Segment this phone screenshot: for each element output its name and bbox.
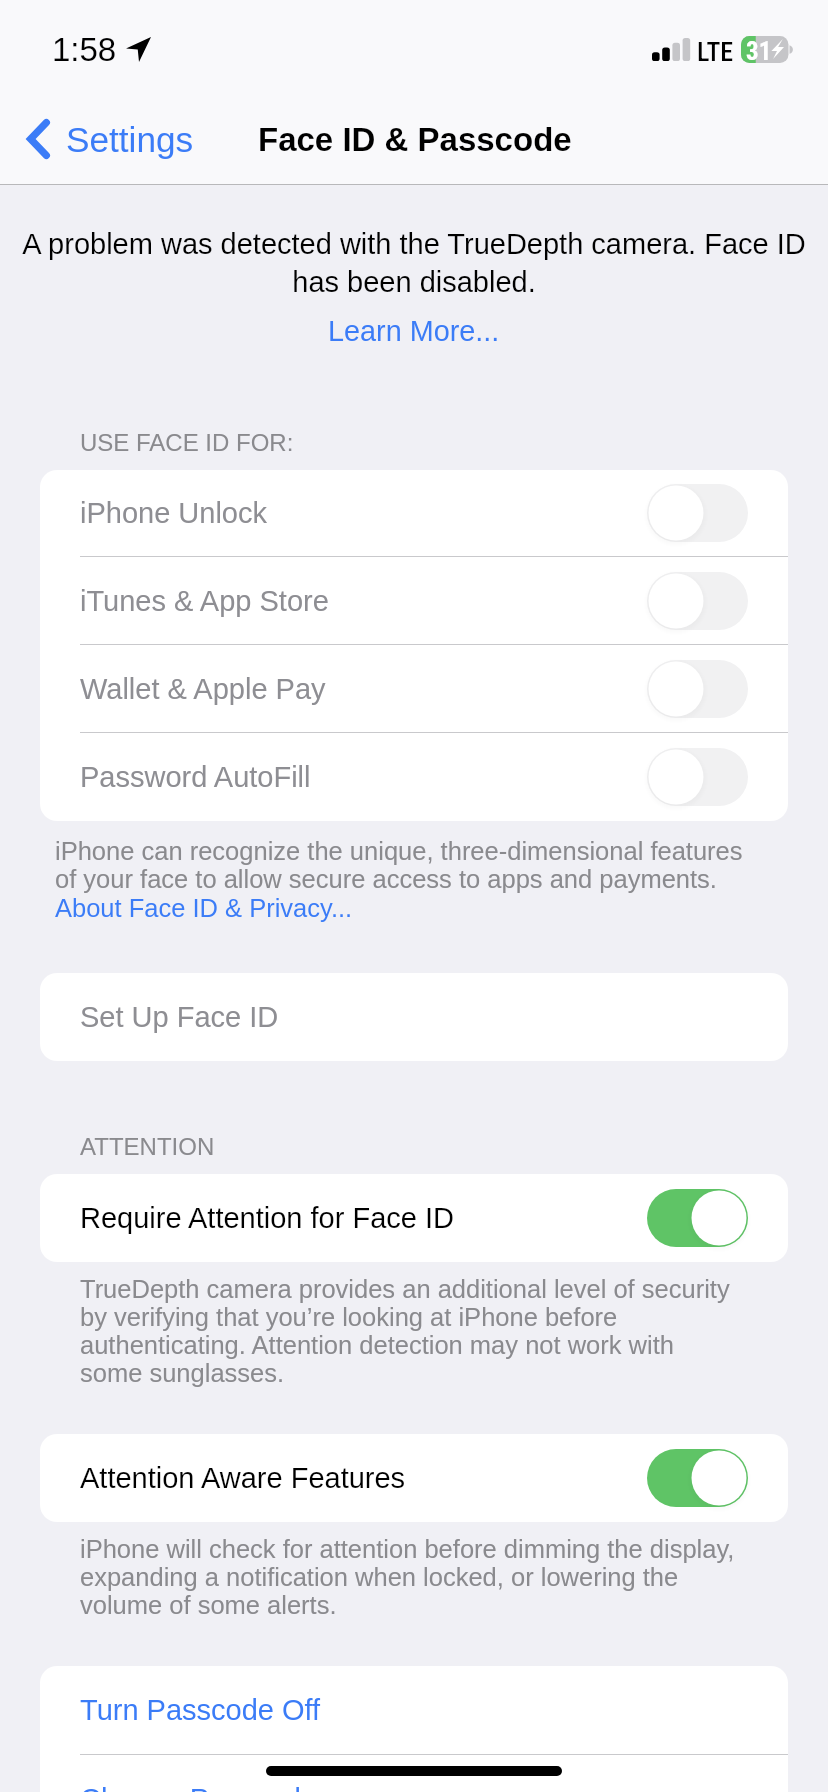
other: Cellular signal xyxy=(652,38,690,61)
staticText: 1:58 xyxy=(52,31,117,68)
button[interactable]: Require Attention for Face ID xyxy=(40,1174,788,1262)
button[interactable]: Learn More... xyxy=(318,311,510,351)
button[interactable]: Turn Passcode Off xyxy=(40,1666,788,1754)
button[interactable]: Back to Settings xyxy=(0,107,208,171)
staticText: TrueDepth camera provides an additional … xyxy=(80,1275,742,1388)
staticText: USE FACE ID FOR: xyxy=(80,429,294,456)
staticText: iTunes & App Store xyxy=(80,585,329,617)
button[interactable]: Wallet & Apple Pay xyxy=(40,645,788,732)
other: Back to Settings xyxy=(27,119,50,159)
staticText: A problem was detected with the TrueDept… xyxy=(20,228,808,299)
other: Battery 31 percent, charging xyxy=(741,36,794,65)
button[interactable]: Set Up Face ID xyxy=(40,973,788,1061)
staticText: iPhone will check for attention before d… xyxy=(80,1535,742,1620)
button[interactable]: iPhone Unlock xyxy=(40,470,788,556)
staticText: Wallet & Apple Pay xyxy=(80,673,326,705)
button[interactable]: About Face ID & Privacy... xyxy=(55,894,353,922)
staticText: Face ID & Passcode xyxy=(258,121,572,158)
staticText: Change Passcode xyxy=(80,1783,317,1792)
button[interactable]: Password AutoFill xyxy=(40,733,788,821)
button[interactable]: Attention Aware Features xyxy=(40,1434,788,1522)
staticText: Set Up Face ID xyxy=(80,1001,279,1033)
staticText: Attention Aware Features xyxy=(80,1462,406,1494)
button[interactable]: Change Passcode xyxy=(40,1755,788,1792)
other: Location xyxy=(126,37,151,62)
staticText: ATTENTION xyxy=(80,1133,215,1160)
staticText: iPhone can recognize the unique, three-d… xyxy=(55,837,745,894)
staticText: LTE xyxy=(697,37,734,67)
staticText: iPhone Unlock xyxy=(80,497,267,529)
button[interactable]: iTunes & App Store xyxy=(40,557,788,644)
staticText: Settings xyxy=(66,120,194,159)
staticText: 31 xyxy=(746,37,772,66)
staticText: Password AutoFill xyxy=(80,761,311,793)
staticText: Turn Passcode Off xyxy=(80,1694,321,1726)
staticText: Require Attention for Face ID xyxy=(80,1202,454,1234)
